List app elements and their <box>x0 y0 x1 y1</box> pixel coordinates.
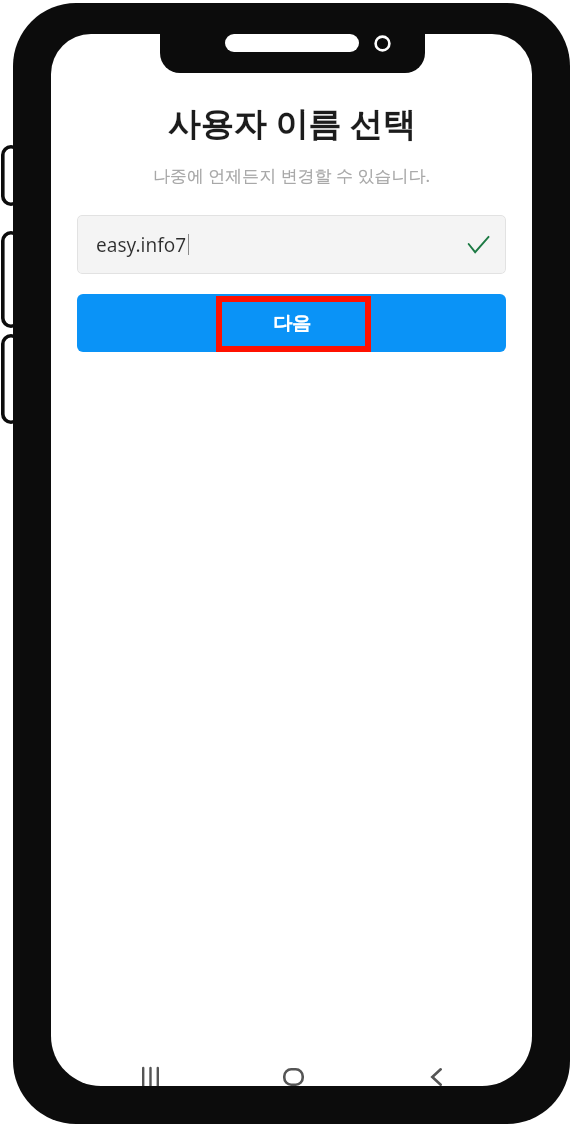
staticText: 나중에 언제든지 변경할 수 있습니다. <box>51 164 532 187</box>
button[interactable]: Back <box>403 1050 469 1086</box>
button[interactable]: Home <box>260 1050 326 1086</box>
button[interactable]: easy.info7 <box>77 215 506 274</box>
staticText: 사용자 이름 선택 <box>51 101 532 146</box>
staticText: easy.info7 <box>96 232 187 258</box>
button[interactable]: Recent apps <box>117 1050 183 1086</box>
button[interactable]: 다음 <box>77 294 506 352</box>
staticText: 다음 <box>273 312 311 336</box>
